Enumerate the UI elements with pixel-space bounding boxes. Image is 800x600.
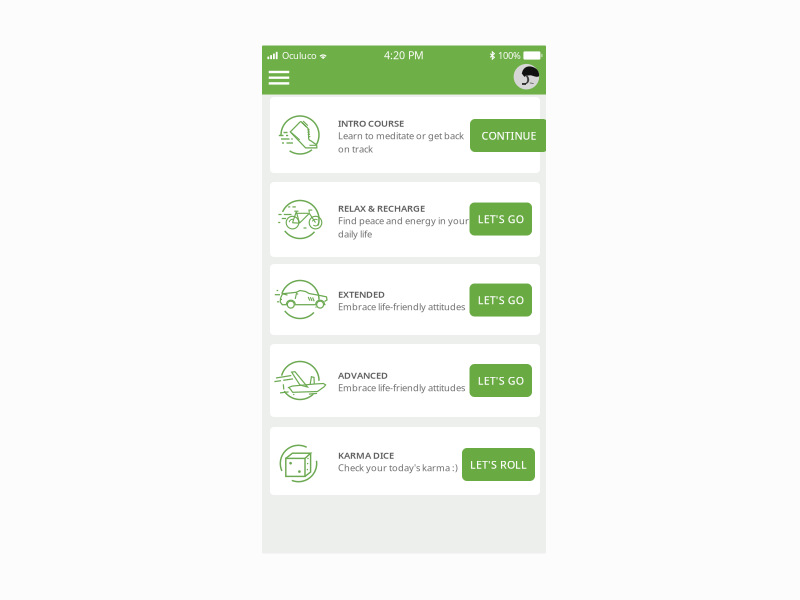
staticText: Learn to meditate or get back [338, 129, 464, 142]
button[interactable]: LET'S ROLL [462, 448, 535, 481]
button[interactable]: Profile [511, 62, 541, 92]
button[interactable]: CONTINUE [470, 119, 548, 152]
staticText: on track [338, 143, 373, 155]
staticText: Embrace life-friendly attitudes [338, 381, 465, 394]
staticText: Oculuco [282, 49, 317, 62]
staticText: 4:20 PM [384, 48, 424, 62]
staticText: 100% [498, 49, 521, 62]
staticText: LET'S GO [478, 212, 524, 226]
staticText: LET'S GO [478, 373, 524, 388]
staticText: KARMA DICE [338, 449, 394, 461]
staticText: EXTENDED [338, 288, 385, 300]
staticText: INTRO COURSE [338, 117, 404, 129]
button[interactable]: LET'S GO [469, 283, 532, 316]
staticText: RELAX & RECHARGE [338, 202, 425, 214]
staticText: daily life [338, 228, 372, 240]
staticText: LET'S ROLL [470, 457, 527, 472]
staticText: Embrace life-friendly attitudes [338, 300, 465, 313]
staticText: Find peace and energy in your [338, 214, 469, 227]
button[interactable]: LET'S GO [469, 364, 532, 397]
staticText: LET'S GO [478, 293, 524, 307]
button[interactable]: Menu [262, 64, 296, 92]
staticText: Check your today's karma :) [338, 461, 458, 474]
staticText: CONTINUE [481, 128, 536, 143]
button[interactable]: LET'S GO [469, 202, 532, 235]
staticText: ADVANCED [338, 369, 388, 381]
